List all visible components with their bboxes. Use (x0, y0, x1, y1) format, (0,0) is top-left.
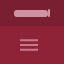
button[interactable]: Menu (12, 28, 46, 62)
